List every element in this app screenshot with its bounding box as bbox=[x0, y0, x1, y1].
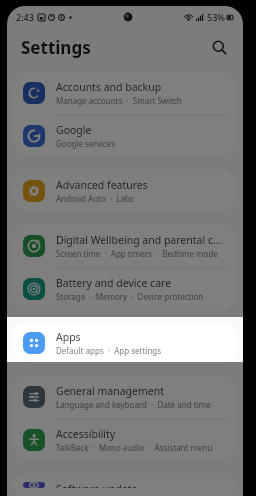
button[interactable]: Accounts and backup bbox=[13, 72, 237, 114]
staticText: Storage · Memory · Device protection bbox=[56, 291, 204, 302]
staticText: Android Auto · Labs bbox=[56, 193, 134, 204]
staticText: Advanced features bbox=[56, 178, 148, 192]
staticText: Apps bbox=[56, 330, 81, 344]
staticText: Battery and device care bbox=[56, 276, 172, 290]
button[interactable]: General management bbox=[13, 376, 237, 418]
staticText: Google services bbox=[56, 138, 116, 149]
staticText: 53% bbox=[207, 11, 225, 23]
staticText: Google bbox=[56, 123, 92, 137]
staticText: Software update bbox=[56, 482, 138, 488]
staticText: Manage accounts · Smart Switch bbox=[56, 95, 182, 106]
staticText: Default apps · App settings bbox=[56, 345, 162, 356]
button[interactable]: Google bbox=[13, 115, 237, 157]
button[interactable]: Advanced features bbox=[13, 170, 237, 212]
button[interactable]: Accessibility bbox=[13, 419, 237, 461]
staticText: Language and keyboard · Date and time bbox=[56, 399, 211, 410]
staticText: 2:43 bbox=[16, 11, 34, 23]
staticText: Settings bbox=[21, 36, 91, 59]
staticText: Accessibility bbox=[56, 427, 116, 441]
button[interactable]: Software update bbox=[13, 474, 237, 496]
button[interactable]: Digital Wellbeing and parental controls bbox=[13, 225, 237, 267]
button[interactable]: Search bbox=[205, 33, 233, 61]
button[interactable]: Battery and device care bbox=[13, 268, 237, 310]
button[interactable]: Apps bbox=[13, 322, 237, 364]
staticText: TalkBack · Mono audio · Assistant menu bbox=[56, 442, 213, 453]
staticText: General management bbox=[56, 384, 164, 398]
staticText: Screen time · App timers · Bedtime mode bbox=[56, 248, 218, 259]
staticText: Digital Wellbeing and parental controls bbox=[56, 233, 227, 247]
staticText: Accounts and backup bbox=[56, 80, 162, 94]
